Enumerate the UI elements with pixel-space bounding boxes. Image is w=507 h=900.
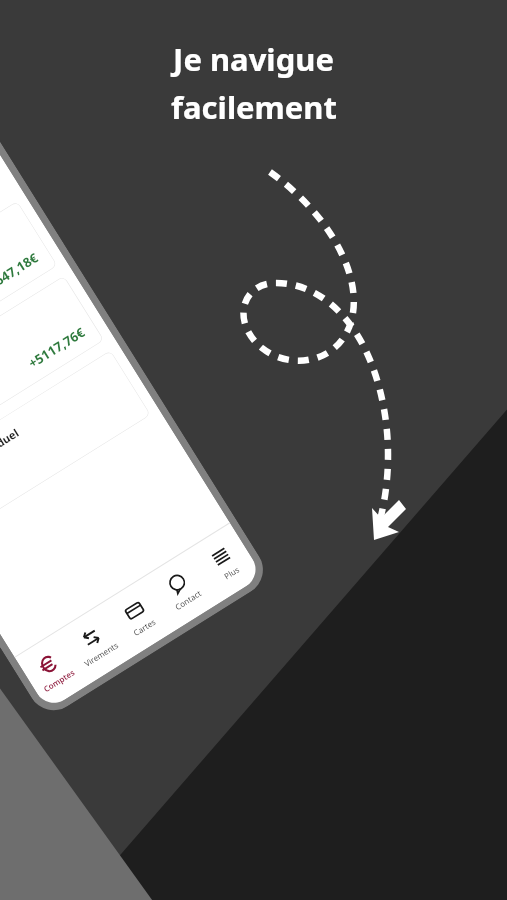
button[interactable]: Livret A: [0, 276, 104, 464]
button[interactable]: Contact: [151, 562, 212, 618]
staticText: Virements: [82, 639, 121, 669]
button[interactable]: Cartes: [108, 589, 169, 645]
staticText: facilement: [171, 86, 337, 128]
staticText: Compte individuel: [0, 425, 22, 491]
button[interactable]: Compte individuel: [0, 350, 151, 539]
button[interactable]: Comptes: [22, 643, 83, 698]
staticText: Cartes: [131, 615, 158, 638]
staticText: Je navigue: [173, 38, 334, 80]
button[interactable]: Compte courant: [0, 201, 57, 390]
staticText: Contact: [173, 587, 203, 612]
button[interactable]: Virements: [65, 616, 126, 672]
staticText: +5117,76€: [25, 323, 89, 372]
staticText: Comptes: [41, 666, 77, 694]
staticText: Plus: [222, 563, 241, 581]
staticText: +1647,18€: [0, 248, 42, 297]
button[interactable]: Plus: [194, 535, 256, 591]
